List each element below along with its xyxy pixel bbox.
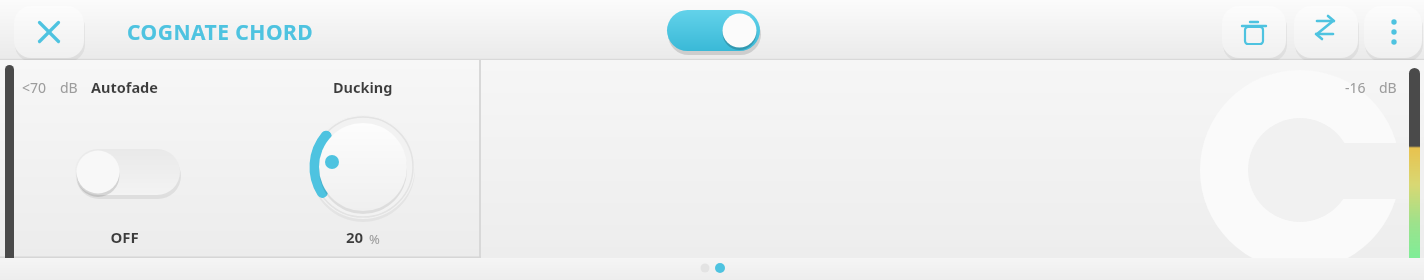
button[interactable]: More options xyxy=(1364,6,1422,58)
button[interactable]: Close xyxy=(14,6,84,58)
button[interactable]: Swap xyxy=(1294,6,1358,58)
button[interactable]: Delete xyxy=(1222,6,1286,58)
button[interactable]: Autofade toggle xyxy=(75,149,180,195)
button[interactable]: Ducking amount xyxy=(311,115,415,219)
button[interactable]: Enable effect xyxy=(667,10,760,51)
